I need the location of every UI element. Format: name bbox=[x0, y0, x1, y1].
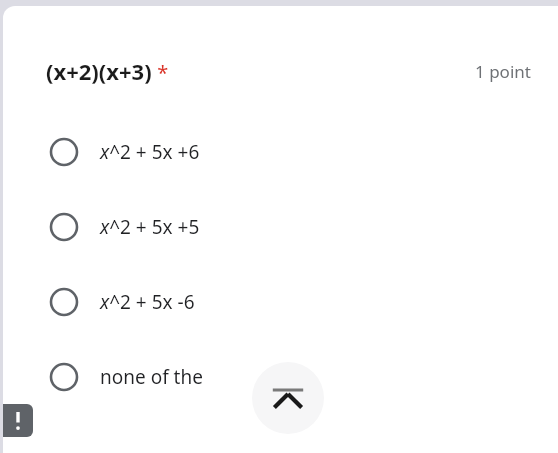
staticText: x^2 + 5x +5 bbox=[100, 214, 200, 240]
button[interactable]: x^2 + 5x +6 bbox=[3, 114, 558, 189]
button[interactable]: x^2 + 5x +5 bbox=[3, 189, 558, 264]
button[interactable]: x^2 + 5x -6 bbox=[3, 264, 558, 339]
staticText: (x+2)(x+3) * bbox=[46, 56, 169, 86]
button[interactable]: Scroll to top bbox=[252, 362, 324, 434]
staticText: x^2 + 5x -6 bbox=[100, 289, 195, 315]
button[interactable]: Warning bbox=[3, 404, 33, 437]
button[interactable]: none of the bbox=[3, 339, 558, 414]
staticText: x^2 + 5x +6 bbox=[100, 139, 200, 165]
staticText: 1 point bbox=[475, 60, 531, 83]
staticText: none of the bbox=[100, 364, 203, 390]
